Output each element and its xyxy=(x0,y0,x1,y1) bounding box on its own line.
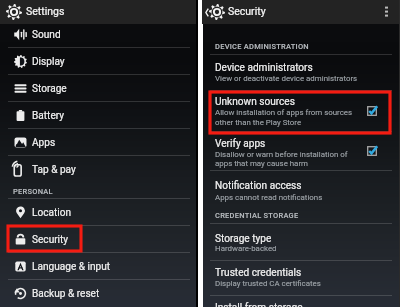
staticText: View or deactivate device administrators xyxy=(215,74,358,83)
button[interactable]: Display xyxy=(0,47,197,74)
staticText: Tap & pay xyxy=(32,164,76,176)
button[interactable]: Navigate up xyxy=(203,0,211,24)
staticText: Security xyxy=(228,5,266,17)
button[interactable]: Apps xyxy=(0,128,197,155)
staticText: Backup & reset xyxy=(32,288,100,300)
staticText: Notification access xyxy=(215,180,302,192)
staticText: Location xyxy=(32,207,72,219)
staticText: other than the Play Store xyxy=(215,118,302,127)
staticText: Apps xyxy=(32,137,56,149)
button[interactable]: Unknown sources xyxy=(202,90,400,131)
staticText: Apps cannot read notifications xyxy=(215,193,323,202)
staticText: Settings xyxy=(26,5,65,17)
button[interactable]: Device administrators xyxy=(202,54,400,90)
staticText: Unknown sources xyxy=(215,96,295,108)
staticText: PERSONAL xyxy=(13,187,53,196)
button[interactable]: Location xyxy=(0,198,197,225)
staticText: Storage type xyxy=(215,233,272,245)
button[interactable]: Tap & pay xyxy=(0,155,197,182)
staticText: Battery xyxy=(32,110,65,122)
staticText: CREDENTIAL STORAGE xyxy=(215,211,299,220)
button[interactable]: Trusted credentials xyxy=(202,260,400,295)
button[interactable]: Install from storage xyxy=(202,295,400,307)
button[interactable]: Sound xyxy=(0,20,197,47)
button[interactable]: Security xyxy=(0,225,197,252)
staticText: Sound xyxy=(32,29,61,41)
button[interactable]: Language & input xyxy=(0,252,197,279)
staticText: Display trusted CA certificates xyxy=(215,279,321,288)
button[interactable]: Storage xyxy=(0,74,197,101)
staticText: Trusted credentials xyxy=(215,267,302,279)
button[interactable]: Storage type xyxy=(202,223,400,260)
button[interactable]: Notification access xyxy=(202,170,400,205)
staticText: Storage xyxy=(32,83,67,95)
staticText: Hardware-backed xyxy=(215,244,277,253)
staticText: Disallow or warn before installation of xyxy=(215,150,348,159)
staticText: Security xyxy=(32,234,69,246)
staticText: Install from storage xyxy=(215,302,303,307)
staticText: Language & input xyxy=(32,261,111,273)
staticText: Display xyxy=(32,56,65,68)
staticText: DEVICE ADMINISTRATION xyxy=(215,42,309,51)
button[interactable]: Backup & reset xyxy=(0,279,197,306)
staticText: Device administrators xyxy=(215,62,313,74)
button[interactable]: More options xyxy=(378,0,394,24)
button[interactable]: Battery xyxy=(0,101,197,128)
staticText: Allow installation of apps from sources xyxy=(215,108,353,117)
staticText: apps that may cause harm xyxy=(215,159,309,168)
staticText: Verify apps xyxy=(215,138,266,150)
button[interactable]: Verify apps xyxy=(202,131,400,170)
